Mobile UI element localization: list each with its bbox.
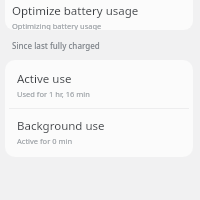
staticText: Active use	[17, 71, 72, 87]
button[interactable]: Background use	[5, 109, 193, 155]
staticText: Optimize battery usage	[12, 3, 139, 19]
staticText: Since last fully charged	[12, 40, 100, 51]
staticText: Used for 1 hr, 16 min	[17, 89, 90, 99]
staticText: Background use	[17, 118, 105, 134]
button[interactable]: Active use	[5, 62, 193, 108]
button[interactable]: Optimize battery usage	[5, 0, 193, 30]
staticText: Optimizing battery usage	[12, 21, 102, 30]
staticText: Active for 0 min	[17, 136, 73, 146]
